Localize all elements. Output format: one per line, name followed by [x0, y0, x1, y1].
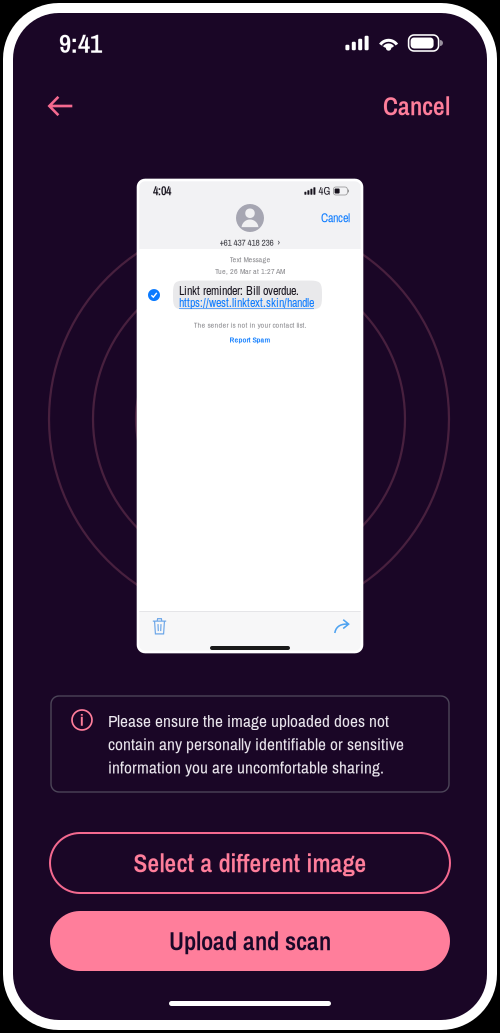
staticText: Linkt reminder: Bill overdue.: [179, 283, 299, 299]
staticText: Text Message: [229, 254, 270, 265]
staticText: 4:04: [153, 183, 171, 199]
staticText: i: [80, 709, 84, 731]
staticText: Report Spam: [229, 334, 270, 345]
staticText: Tue, 26 Mar at 1:27 AM: [215, 266, 285, 277]
staticText: Select a different image: [133, 846, 366, 880]
button[interactable]: Back: [48, 83, 94, 129]
staticText: The sender is not in your contact list.: [193, 320, 306, 330]
staticText: Please ensure the image uploaded does no…: [108, 709, 404, 779]
staticText: +61 437 418 236 ›: [219, 236, 280, 249]
staticText: 4G: [318, 184, 330, 198]
staticText: Cancel: [321, 210, 350, 226]
staticText: https://west.linktext.skin/handle: [179, 295, 314, 311]
button[interactable]: Upload and scan: [50, 911, 450, 971]
staticText: Cancel: [383, 89, 450, 123]
staticText: 9:41: [59, 25, 102, 61]
button[interactable]: Cancel: [377, 83, 456, 129]
staticText: Upload and scan: [169, 924, 331, 958]
button[interactable]: Select a different image: [50, 833, 450, 893]
